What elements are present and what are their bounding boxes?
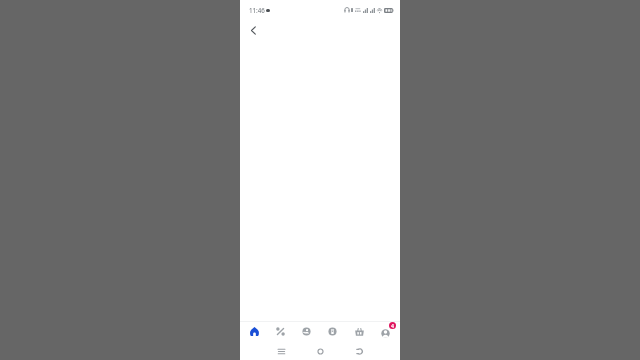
- button[interactable]: Home: [301, 343, 340, 360]
- button[interactable]: Back: [340, 343, 379, 360]
- staticText: 4: [391, 322, 394, 329]
- button[interactable]: Orders: [319, 322, 346, 341]
- button[interactable]: Cart: [346, 322, 373, 341]
- button[interactable]: Recent apps: [262, 343, 301, 360]
- button[interactable]: Discounts: [267, 322, 293, 341]
- button[interactable]: Profile: [373, 322, 400, 341]
- button[interactable]: Home: [241, 322, 267, 341]
- staticText: 11:46: [249, 6, 265, 14]
- button[interactable]: Back: [245, 22, 262, 39]
- button[interactable]: Express: [293, 322, 319, 341]
